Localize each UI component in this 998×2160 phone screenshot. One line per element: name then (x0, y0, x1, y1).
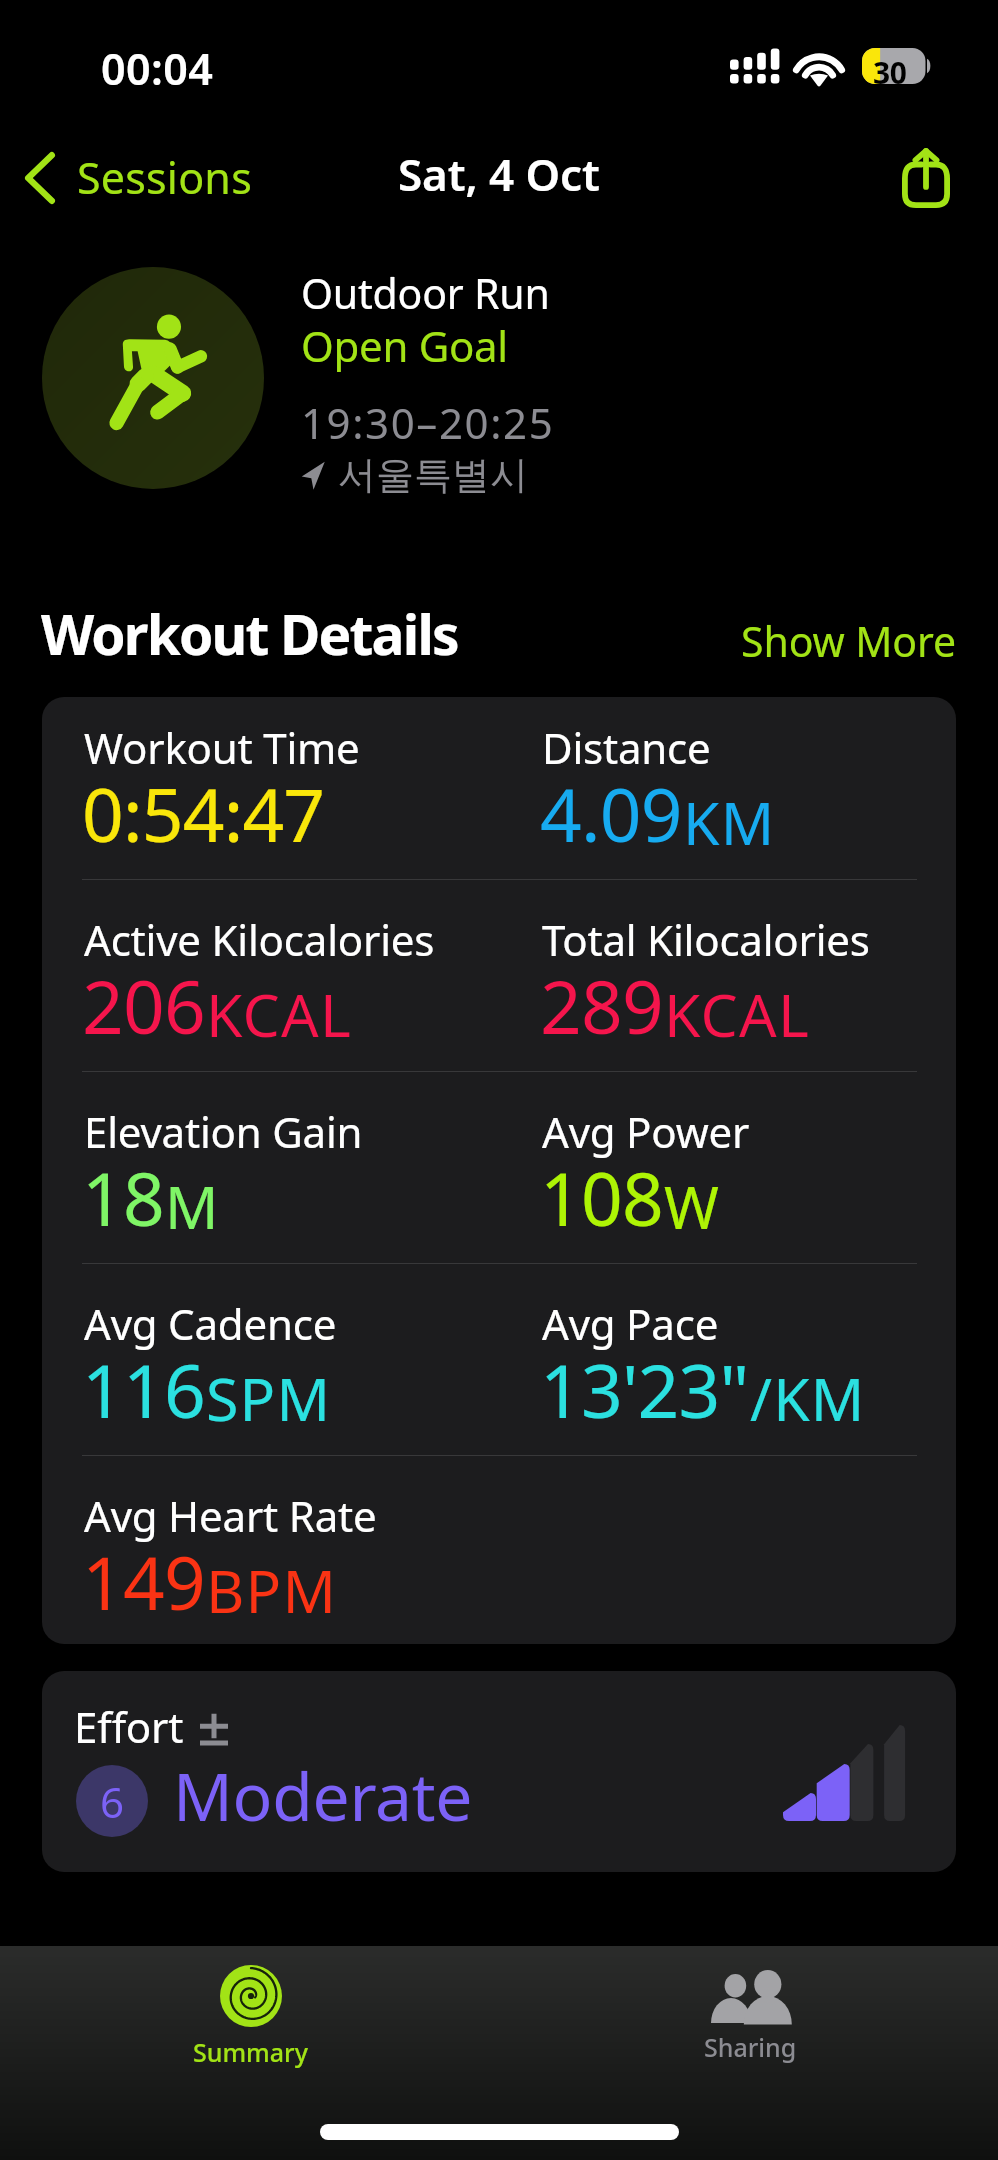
staticText: Outdoor Run (301, 265, 550, 321)
staticText: Total Kilocalories (542, 911, 870, 968)
staticText: Moderate (173, 1750, 473, 1840)
staticText: Summary (193, 2035, 308, 2069)
button[interactable]: Sharing (629, 1946, 871, 2086)
button[interactable]: Share (878, 133, 998, 222)
staticText: 149 (82, 1532, 205, 1631)
staticText: SPM (206, 1358, 332, 1438)
staticText: Workout Time (84, 719, 360, 776)
staticText: 서울특별시 (338, 451, 528, 499)
button[interactable]: Effort (42, 1671, 956, 1872)
staticText: Avg Heart Rate (84, 1487, 377, 1544)
staticText: Effort (74, 1698, 184, 1755)
staticText: Sat, 4 Oct (398, 144, 600, 204)
staticText: KCAL (664, 974, 811, 1054)
staticText: Sharing (704, 2030, 797, 2064)
staticText: 289 (540, 956, 663, 1055)
staticText: W (664, 1166, 721, 1246)
staticText: 00:04 (101, 39, 214, 98)
staticText: Show More (741, 613, 957, 668)
staticText: 18 (82, 1148, 164, 1247)
staticText: 4.09 (540, 764, 682, 863)
staticText: Avg Cadence (84, 1295, 337, 1352)
staticText: Distance (542, 719, 711, 776)
staticText: BPM (206, 1550, 338, 1630)
staticText: KCAL (206, 974, 353, 1054)
button[interactable]: Show More (725, 600, 998, 675)
staticText: 0:54:47 (82, 764, 325, 863)
button[interactable]: Sessions (0, 136, 268, 219)
staticText: 19:30–20:25 (301, 394, 555, 451)
staticText: 6 (100, 1773, 125, 1830)
staticText: 206 (82, 956, 205, 1055)
staticText: Elevation Gain (84, 1103, 363, 1160)
staticText: M (165, 1166, 220, 1246)
staticText: 108 (540, 1148, 663, 1247)
staticText: Avg Pace (542, 1295, 719, 1352)
staticText: /KM (750, 1358, 866, 1438)
staticText: Workout Details (41, 596, 458, 671)
staticText: 116 (82, 1340, 205, 1439)
staticText: KM (683, 782, 776, 862)
staticText: 30 (873, 52, 907, 88)
staticText: Active Kilocalories (84, 911, 435, 968)
staticText: Open Goal (301, 317, 508, 374)
staticText: 13'23" (540, 1340, 749, 1439)
staticText: Avg Power (542, 1103, 750, 1160)
staticText: Sessions (77, 148, 252, 207)
button[interactable]: Summary (129, 1946, 371, 2086)
